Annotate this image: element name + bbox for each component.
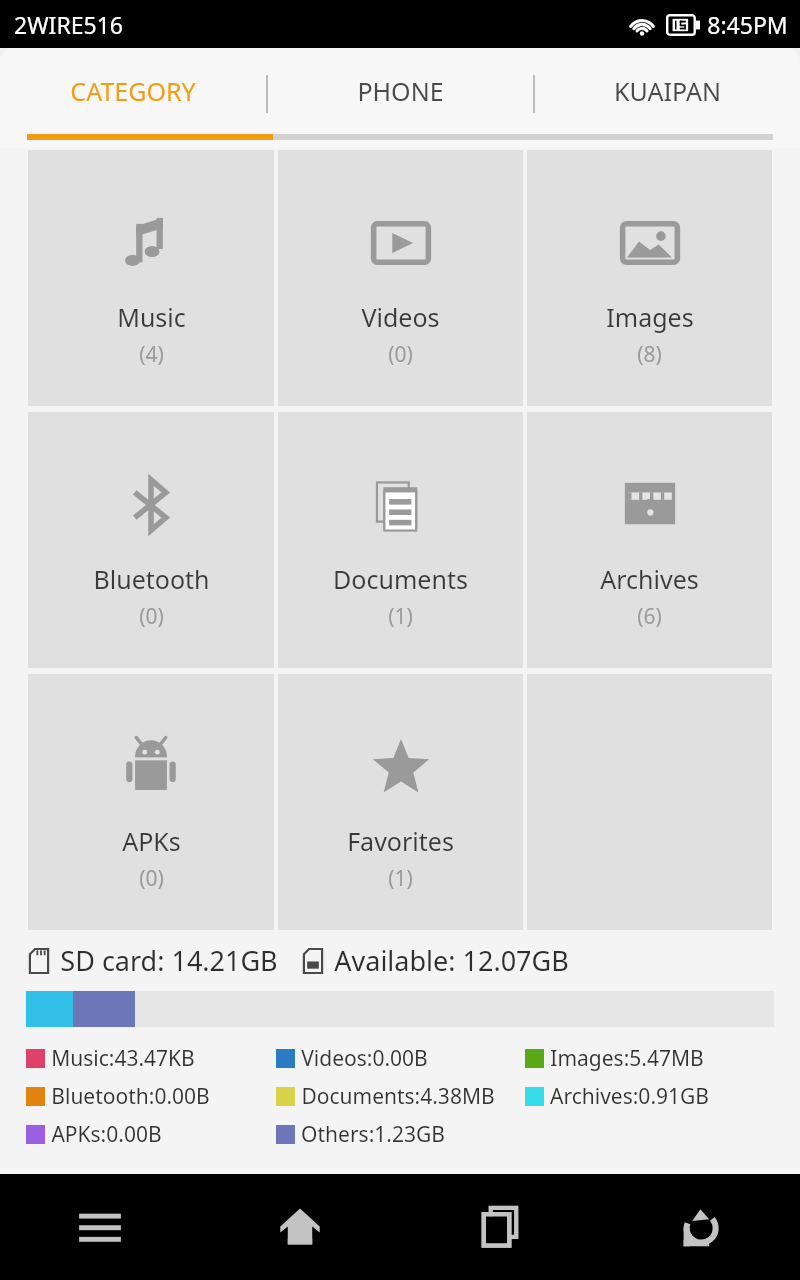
- button[interactable]: Documents: [278, 412, 523, 668]
- staticText: Archives: [600, 562, 699, 596]
- staticText: (0): [388, 340, 413, 369]
- staticText: (1): [388, 602, 413, 631]
- staticText: (0): [139, 602, 164, 631]
- button[interactable]: Images: [527, 150, 772, 406]
- staticText: 8:45PM: [707, 9, 788, 40]
- staticText: SD card: 14.21GB: [60, 942, 278, 979]
- staticText: Others:1.23GB: [301, 1120, 445, 1149]
- button[interactable]: Recents: [400, 1174, 600, 1280]
- button[interactable]: Menu: [0, 1174, 200, 1280]
- staticText: Documents: [333, 562, 468, 596]
- staticText: Documents:4.38MB: [301, 1082, 495, 1111]
- button[interactable]: Bluetooth: [28, 412, 274, 668]
- button[interactable]: CATEGORY: [0, 48, 266, 140]
- staticText: CATEGORY: [70, 74, 196, 108]
- staticText: (4): [139, 340, 164, 369]
- staticText: Bluetooth: [93, 562, 210, 596]
- button[interactable]: Music: [28, 150, 274, 406]
- staticText: (1): [388, 864, 413, 893]
- staticText: (8): [637, 340, 662, 369]
- button[interactable]: Videos: [278, 150, 523, 406]
- staticText: APKs: [122, 824, 181, 858]
- staticText: Videos:0.00B: [301, 1044, 428, 1073]
- button[interactable]: KUAIPAN: [535, 48, 800, 140]
- staticText: Archives:0.91GB: [550, 1082, 709, 1111]
- staticText: PHONE: [357, 74, 444, 108]
- button[interactable]: Back: [600, 1174, 800, 1280]
- button[interactable]: Favorites: [278, 674, 523, 930]
- staticText: APKs:0.00B: [51, 1120, 162, 1149]
- staticText: (6): [637, 602, 662, 631]
- staticText: Images: [606, 300, 694, 334]
- staticText: Favorites: [347, 824, 454, 858]
- button[interactable]: APKs: [28, 674, 274, 930]
- staticText: 2WIRE516: [14, 9, 123, 40]
- staticText: KUAIPAN: [614, 74, 721, 108]
- button[interactable]: PHONE: [268, 48, 533, 140]
- staticText: (0): [139, 864, 164, 893]
- button[interactable]: Archives: [527, 412, 772, 668]
- staticText: Images:5.47MB: [550, 1044, 704, 1073]
- staticText: Available: 12.07GB: [334, 942, 569, 979]
- staticText: Bluetooth:0.00B: [51, 1082, 210, 1111]
- staticText: Music: [117, 300, 186, 334]
- button[interactable]: Home: [200, 1174, 400, 1280]
- staticText: Videos: [361, 300, 440, 334]
- staticText: Music:43.47KB: [51, 1044, 195, 1073]
